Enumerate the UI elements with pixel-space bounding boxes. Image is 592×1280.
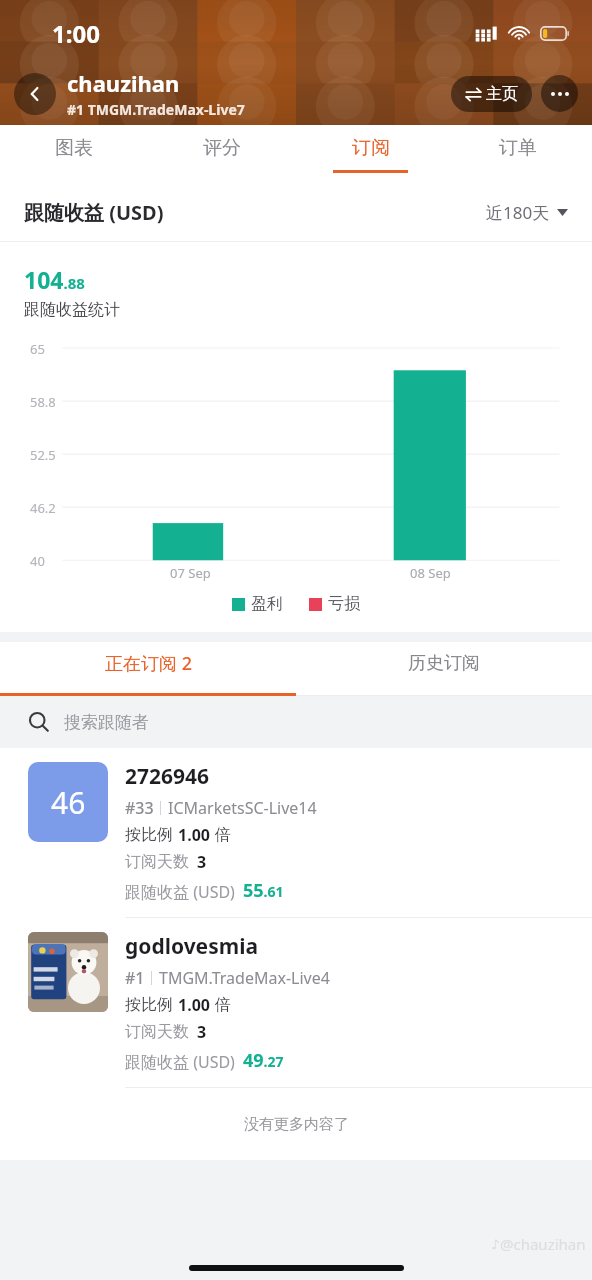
button[interactable]: Back [14,73,56,115]
staticText: 历史订阅 [408,652,480,675]
button[interactable]: More options [541,75,578,112]
staticText: 跟随收益 (USD) [24,199,486,226]
button[interactable]: 订单 [444,125,592,183]
staticText: chauzihan [67,68,180,98]
staticText: 倍 [215,995,231,1015]
staticText: 65 [30,340,45,358]
staticText: 正在订阅 2 [105,651,192,676]
staticText: 3 [197,1021,207,1043]
staticText: 2726946 [125,762,210,791]
staticText: 图表 [55,136,93,160]
staticText: 倍 [215,825,231,845]
staticText: @chauzihan [500,1234,586,1254]
staticText: 按比例 [125,825,173,845]
button[interactable]: 正在订阅 2 [0,642,296,696]
button[interactable]: 46 [0,748,592,917]
staticText: TMGM.TradeMax-Live4 [159,967,330,989]
staticText: 1:00 [52,17,100,50]
button[interactable]: godlovesmia [0,918,592,1087]
staticText: 55.61 [243,878,284,903]
button[interactable]: 图表 [0,125,148,183]
staticText: 没有更多内容了 [244,1115,349,1134]
staticText: 46.2 [30,499,56,517]
staticText: 订阅天数 [125,1022,189,1042]
staticText: 1.00 [178,824,210,846]
button[interactable]: 订阅 [296,125,444,183]
staticText: ♪ [491,1237,500,1252]
staticText: ICMarketsSC-Live14 [168,797,317,819]
staticText: 订阅天数 [125,852,189,872]
staticText: 亏损 [328,594,360,614]
staticText: 1.00 [178,994,210,1016]
button[interactable]: 历史订阅 [296,642,592,696]
staticText: #33 [125,797,154,819]
staticText: #1 TMGM.TradeMax-Live7 [67,100,245,119]
button[interactable]: 评分 [148,125,296,183]
staticText: 52.5 [30,446,56,464]
staticText: 主页 [486,84,518,104]
staticText: 07 Sep [170,564,211,582]
staticText: 订阅 [352,136,390,160]
button[interactable]: Search [0,696,592,748]
staticText: 40 [30,552,45,570]
staticText: 近180天 [486,201,550,224]
staticText: 58.8 [30,393,56,411]
staticText: 跟随收益 (USD) [125,881,235,903]
staticText: 按比例 [125,995,173,1015]
staticText: 订单 [499,136,537,160]
staticText: 跟随收益 (USD) [125,1051,235,1073]
staticText: 46 [51,782,86,823]
staticText: 搜索跟随者 [64,712,149,733]
button[interactable]: 主页 [451,76,532,112]
staticText: 08 Sep [410,564,451,582]
staticText: 盈利 [251,594,283,614]
staticText: 跟随收益统计 [24,300,120,320]
other: Search [28,711,50,733]
staticText: 评分 [203,136,241,160]
staticText: 49.27 [243,1048,284,1073]
staticText: 104.88 [24,264,85,295]
button[interactable]: 近180天 [486,201,568,224]
staticText: godlovesmia [125,932,259,961]
staticText: 3 [197,851,207,873]
staticText: #1 [125,967,145,989]
